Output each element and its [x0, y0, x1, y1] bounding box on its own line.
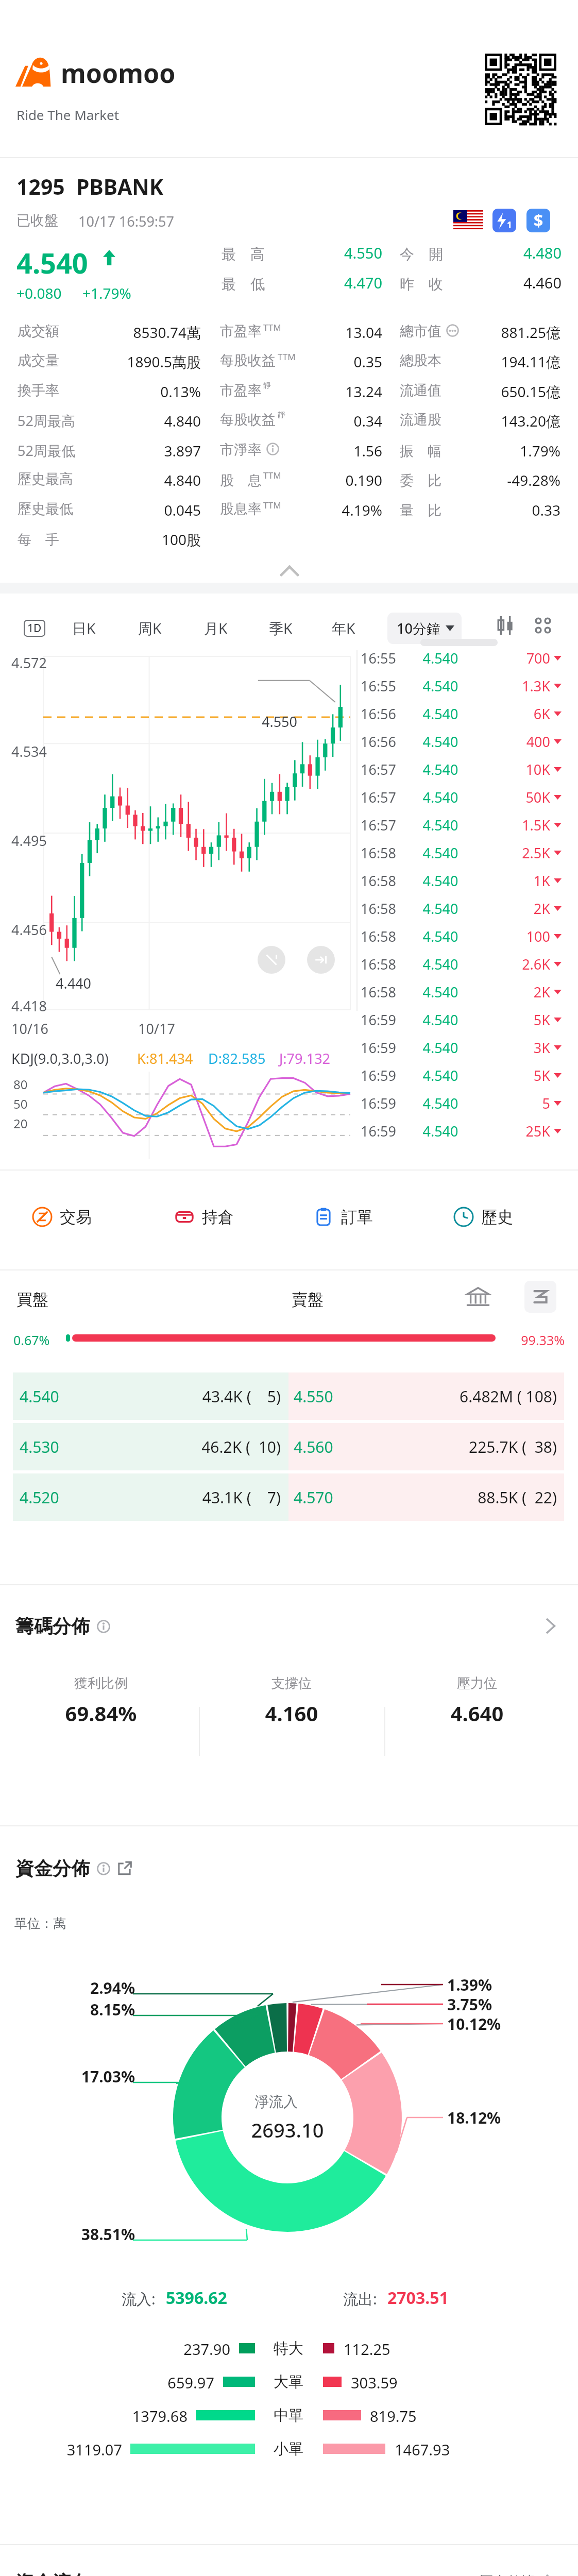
staticText: 4.540: [397, 1010, 484, 1029]
button[interactable]: 16:57: [361, 811, 562, 839]
staticText: 0.35: [259, 352, 382, 371]
button[interactable]: 16:59: [361, 1033, 562, 1061]
staticText: 0.045: [77, 500, 201, 520]
button[interactable]: Broker queue: [466, 1284, 490, 1309]
button[interactable]: 16:59: [361, 1061, 562, 1089]
button[interactable]: 1D: [27, 621, 42, 636]
staticText: 4.19%: [259, 500, 382, 520]
button[interactable]: 4.570: [288, 1473, 564, 1521]
staticText: TTM: [263, 469, 281, 481]
staticText: 16:59: [361, 1066, 397, 1085]
staticText: 16:58: [361, 871, 397, 890]
button[interactable]: 16:58: [361, 894, 562, 922]
button[interactable]: 訂單: [313, 1195, 373, 1239]
staticText: 流通股: [400, 411, 441, 429]
button[interactable]: 16:58: [361, 839, 562, 867]
button[interactable]: 年K: [332, 618, 355, 638]
staticText: 16:56: [361, 704, 397, 723]
button[interactable]: 16:59: [361, 1117, 562, 1145]
staticText: 4.540: [397, 899, 484, 918]
button[interactable]: Jump to latest: [307, 946, 335, 974]
staticText: 4.840: [77, 411, 201, 431]
staticText: 小單: [260, 2439, 317, 2459]
button[interactable]: Share: [117, 1861, 132, 1875]
staticText: 日K: [72, 618, 96, 638]
button[interactable]: 16:59: [361, 1089, 562, 1117]
button[interactable]: 16:55: [361, 672, 562, 700]
staticText: 69.84%: [15, 1699, 186, 1727]
button[interactable]: 歷史: [453, 1195, 513, 1239]
button[interactable]: Currency: [526, 209, 550, 232]
staticText: 股息率: [220, 500, 262, 518]
staticText: 支撐位: [206, 1675, 377, 1692]
staticText: 100: [484, 927, 550, 946]
staticText: 4.530: [20, 1436, 59, 1458]
button[interactable]: 16:58: [361, 978, 562, 1006]
button[interactable]: 16:57: [361, 755, 562, 783]
staticText: 最 低: [222, 274, 265, 293]
staticText: 0.13%: [77, 382, 201, 401]
button[interactable]: 16:58: [361, 922, 562, 950]
staticText: 1: [507, 219, 512, 231]
button[interactable]: 周K: [138, 618, 162, 638]
button[interactable]: 4.530: [13, 1423, 288, 1470]
button[interactable]: Candlestick style: [496, 616, 515, 635]
staticText: 5K: [484, 1010, 550, 1029]
button[interactable]: 4.560: [288, 1423, 564, 1470]
button[interactable]: 16:58: [361, 950, 562, 978]
button[interactable]: 4.540: [13, 1372, 288, 1420]
button[interactable]: 4.520: [13, 1473, 288, 1521]
staticText: 16:59: [361, 1122, 397, 1141]
staticText: 8.15%: [22, 1999, 135, 2020]
button[interactable]: 16:56: [361, 700, 562, 727]
staticText: 2693.10: [215, 2116, 360, 2143]
button[interactable]: 交易: [32, 1195, 92, 1239]
button[interactable]: 10分鐘: [387, 613, 462, 644]
staticText: 17.03%: [22, 2066, 135, 2087]
staticText: 4.540: [397, 843, 484, 862]
staticText: 10分鐘: [397, 619, 440, 638]
staticText: 4.570: [294, 1487, 333, 1508]
button[interactable]: 季K: [269, 618, 293, 638]
staticText: 1890.5萬股: [77, 352, 201, 371]
staticText: Ride The Market: [16, 106, 120, 124]
staticText: 194.11億: [437, 352, 560, 371]
staticText: 1379.68: [59, 2406, 188, 2426]
staticText: 歷史最高: [18, 470, 73, 488]
staticText: 50K: [484, 788, 550, 807]
button[interactable]: Level 1 quote: [492, 209, 516, 232]
button[interactable]: 16:58: [361, 867, 562, 894]
staticText: 16:59: [361, 1038, 397, 1057]
button[interactable]: 16:56: [361, 727, 562, 755]
staticText: 38.51%: [22, 2224, 135, 2245]
button[interactable]: 日K: [72, 618, 96, 638]
staticText: 獲利比例: [15, 1675, 186, 1692]
staticText: 振 幅: [400, 441, 441, 460]
button[interactable]: Open 資金流向: [545, 2574, 555, 2576]
button[interactable]: Open 籌碼分佈: [545, 1618, 555, 1634]
button[interactable]: Expand chart: [258, 946, 285, 974]
staticText: 籌碼分佈: [15, 1615, 90, 1638]
staticText: 流出:: [343, 2289, 381, 2309]
button[interactable]: Indicators: [534, 616, 552, 635]
staticText: 4.550: [294, 1386, 333, 1407]
button[interactable]: 持倉: [174, 1195, 234, 1239]
staticText: 16:58: [361, 899, 397, 918]
button[interactable]: 月K: [204, 618, 228, 638]
button[interactable]: 16:57: [361, 783, 562, 811]
staticText: 2.6K: [484, 955, 550, 974]
staticText: 流入:: [122, 2289, 160, 2309]
staticText: 資金分佈: [15, 1857, 90, 1880]
staticText: 16:58: [361, 955, 397, 974]
staticText: 1K: [484, 871, 550, 890]
staticText: 1.5K: [484, 816, 550, 835]
staticText: 143.20億: [437, 411, 560, 431]
staticText: 4.550: [262, 712, 298, 731]
button[interactable]: Depth chart: [524, 1281, 556, 1313]
button[interactable]: 16:55: [361, 644, 562, 672]
button[interactable]: 4.550: [288, 1372, 564, 1420]
staticText: 總股本: [400, 352, 441, 369]
staticText: 2703.51: [387, 2286, 449, 2309]
staticText: 1.39%: [447, 1974, 492, 1995]
button[interactable]: 16:59: [361, 1006, 562, 1033]
